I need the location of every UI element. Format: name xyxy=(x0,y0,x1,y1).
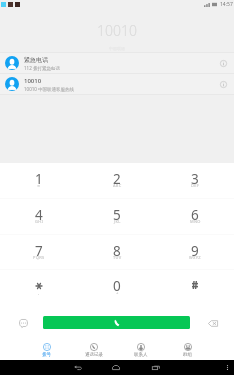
staticText: DEF xyxy=(191,183,200,188)
button[interactable]: Details xyxy=(213,53,233,73)
button[interactable]: Recent apps xyxy=(146,360,166,375)
button[interactable]: 紧急电话 xyxy=(0,53,234,73)
button[interactable]: Home xyxy=(106,360,126,375)
button[interactable]: 联系人 xyxy=(117,340,164,359)
staticText: , xyxy=(38,290,40,295)
staticText: 联系人 xyxy=(134,352,148,358)
button[interactable]: 3 xyxy=(156,163,234,198)
button[interactable]: 群组 xyxy=(164,340,211,359)
button[interactable]: Voice message xyxy=(11,311,35,335)
button[interactable] xyxy=(156,270,234,305)
staticText: ABC xyxy=(113,183,122,188)
button[interactable]: , xyxy=(0,270,78,305)
button[interactable]: 9 xyxy=(156,235,234,270)
staticText: 14:57 xyxy=(220,1,233,8)
button[interactable]: Details xyxy=(213,74,233,94)
button[interactable]: 10010 xyxy=(0,74,234,94)
staticText: JKL xyxy=(114,219,121,224)
button[interactable]: Call xyxy=(43,316,190,329)
staticText: 紧急电话 xyxy=(24,56,48,64)
staticText: 10010 xyxy=(24,77,42,85)
button[interactable]: 5 xyxy=(78,199,156,234)
button[interactable]: 6 xyxy=(156,199,234,234)
button[interactable]: Back xyxy=(68,360,88,375)
staticText: 10010 中国联通客服热线 xyxy=(24,86,75,92)
button[interactable]: 4 xyxy=(0,199,78,234)
button[interactable]: 7 xyxy=(0,235,78,270)
staticText: 10010 xyxy=(97,21,137,40)
staticText: 3 xyxy=(191,170,199,188)
button[interactable]: 拨号 xyxy=(23,340,70,359)
staticText: MNO xyxy=(190,219,201,224)
staticText: + xyxy=(116,290,119,295)
staticText: ∞ xyxy=(37,183,41,188)
staticText: 2 xyxy=(113,170,121,188)
staticText: 7 xyxy=(35,242,43,260)
staticText: 112 拨打紧急电话 xyxy=(24,65,60,71)
staticText: PQRS xyxy=(33,255,45,260)
button[interactable]: 0 xyxy=(78,270,156,305)
staticText: 6 xyxy=(191,206,199,224)
button[interactable]: 1 xyxy=(0,163,78,198)
staticText: 9 xyxy=(191,242,199,260)
staticText: WXYZ xyxy=(189,255,201,260)
staticText: 拨号 xyxy=(42,352,51,358)
button[interactable]: 通话记录 xyxy=(70,340,117,359)
button[interactable]: Delete xyxy=(200,311,225,336)
staticText: 群组 xyxy=(183,352,192,358)
staticText: GHI xyxy=(35,219,44,224)
staticText: 4 xyxy=(35,206,43,224)
staticText: 8 xyxy=(113,242,121,260)
staticText: 1 xyxy=(35,170,43,188)
staticText: 0 xyxy=(113,277,121,295)
staticText: 通话记录 xyxy=(85,352,103,358)
button[interactable]: Menu xyxy=(220,360,234,375)
button[interactable]: 2 xyxy=(78,163,156,198)
button[interactable]: 8 xyxy=(78,235,156,270)
staticText: TUV xyxy=(113,255,122,260)
staticText: 5 xyxy=(113,206,121,224)
